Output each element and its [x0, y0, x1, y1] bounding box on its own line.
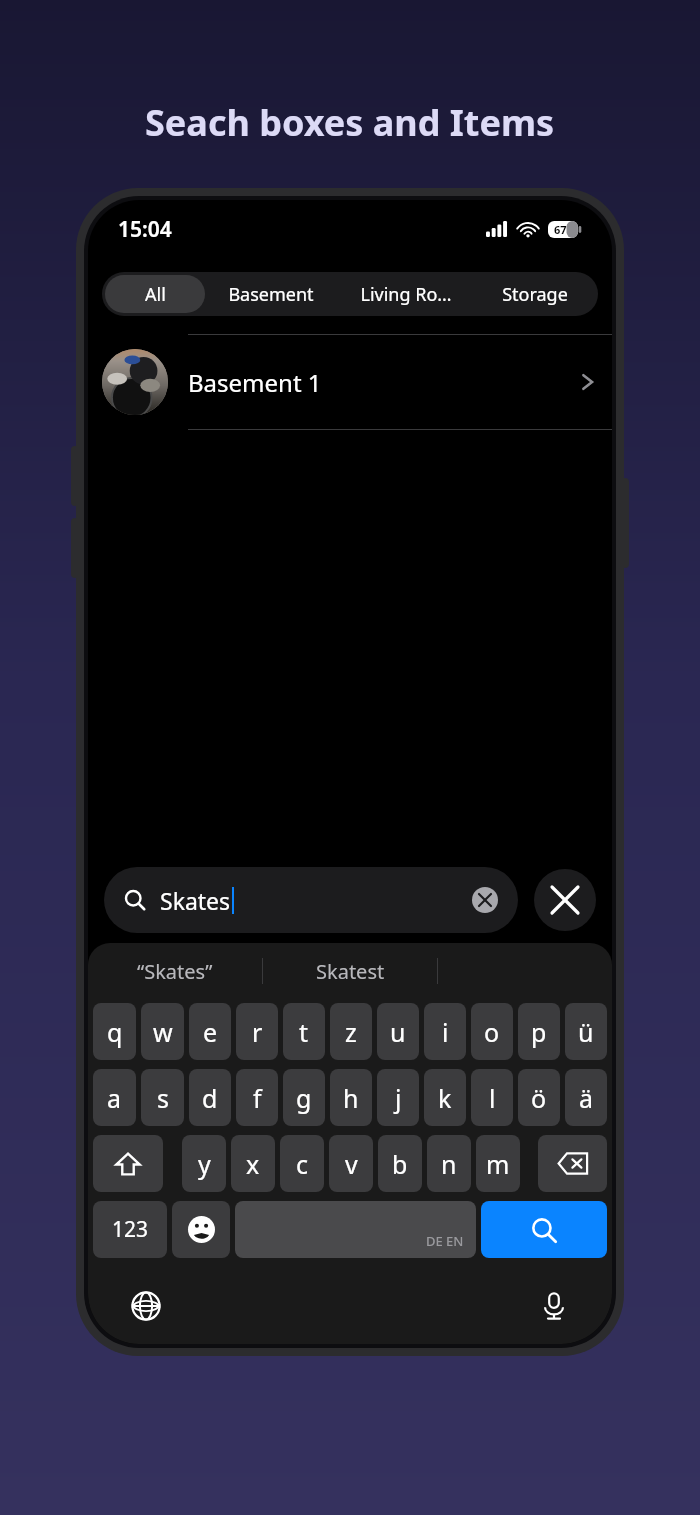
button[interactable]: q [93, 1003, 136, 1060]
staticText: 67 [554, 222, 567, 237]
button[interactable]: d [189, 1069, 231, 1126]
staticText: g [296, 1081, 312, 1115]
staticText: 123 [112, 1215, 149, 1244]
staticText: v [345, 1147, 358, 1181]
staticText: h [343, 1081, 359, 1115]
staticText: e [203, 1015, 218, 1049]
button[interactable]: s [141, 1069, 184, 1126]
button[interactable]: Voice input [530, 1282, 578, 1330]
staticText: Skates [160, 885, 231, 916]
button[interactable]: w [141, 1003, 184, 1060]
button[interactable]: b [378, 1135, 422, 1192]
staticText: r [252, 1015, 263, 1049]
button[interactable]: Skatest [263, 943, 437, 999]
button[interactable]: i [424, 1003, 466, 1060]
button[interactable]: t [283, 1003, 325, 1060]
button[interactable]: 123 [93, 1201, 167, 1258]
staticText: a [107, 1081, 122, 1115]
staticText: Skatest [316, 958, 385, 985]
staticText: ü [578, 1015, 594, 1049]
button[interactable]: f [236, 1069, 278, 1126]
button[interactable]: k [424, 1069, 466, 1126]
button[interactable]: g [283, 1069, 325, 1126]
button[interactable]: Basement 1 [88, 334, 612, 430]
button[interactable]: n [427, 1135, 471, 1192]
button[interactable]: r [236, 1003, 278, 1060]
staticText: “Skates” [137, 958, 213, 985]
button[interactable]: Skates [104, 867, 518, 933]
button[interactable]: Close search [534, 869, 596, 931]
staticText: x [246, 1147, 260, 1181]
staticText: o [484, 1015, 500, 1049]
staticText: All [145, 282, 166, 307]
staticText: q [107, 1015, 123, 1049]
button[interactable]: DE EN [235, 1201, 476, 1258]
button[interactable]: y [182, 1135, 226, 1192]
staticText: Basement 1 [188, 366, 322, 399]
button[interactable]: e [189, 1003, 231, 1060]
button[interactable]: h [330, 1069, 372, 1126]
button[interactable]: u [377, 1003, 419, 1060]
staticText: n [441, 1147, 457, 1181]
button[interactable]: v [329, 1135, 373, 1192]
staticText: i [442, 1015, 449, 1049]
button[interactable]: o [471, 1003, 513, 1060]
staticText: u [390, 1015, 406, 1049]
staticText: w [153, 1015, 173, 1049]
button[interactable]: m [476, 1135, 520, 1192]
staticText: 15:04 [118, 215, 172, 244]
button[interactable]: c [280, 1135, 324, 1192]
button[interactable]: All [105, 275, 205, 313]
button[interactable]: p [518, 1003, 560, 1060]
staticText: Storage [502, 282, 568, 307]
button[interactable]: Change language [122, 1282, 170, 1330]
staticText: ö [531, 1081, 547, 1115]
staticText: j [395, 1081, 402, 1115]
staticText: m [486, 1147, 510, 1181]
staticText: Basement [228, 282, 314, 307]
staticText: t [299, 1015, 309, 1049]
staticText: DE EN [426, 1232, 464, 1250]
staticText: s [157, 1081, 169, 1115]
staticText: Seach boxes and Items [145, 98, 555, 147]
button[interactable]: Emoji [172, 1201, 230, 1258]
staticText: f [253, 1081, 262, 1115]
staticText: c [296, 1147, 309, 1181]
staticText: l [489, 1081, 496, 1115]
staticText: Living Ro… [360, 282, 452, 307]
button[interactable]: x [231, 1135, 275, 1192]
button[interactable]: Backspace [538, 1135, 607, 1192]
staticText: y [198, 1147, 211, 1181]
button[interactable]: Search [481, 1201, 607, 1258]
button[interactable]: Shift [93, 1135, 163, 1192]
button[interactable]: Clear text [472, 887, 498, 913]
button[interactable]: “Skates” [88, 943, 262, 999]
button[interactable]: z [330, 1003, 372, 1060]
staticText: b [392, 1147, 408, 1181]
staticText: d [202, 1081, 218, 1115]
button[interactable]: Storage [474, 275, 595, 313]
staticText: k [438, 1081, 452, 1115]
button[interactable]: j [377, 1069, 419, 1126]
button[interactable]: a [93, 1069, 136, 1126]
staticText: p [531, 1015, 547, 1049]
button[interactable]: ä [565, 1069, 607, 1126]
button[interactable]: ö [518, 1069, 560, 1126]
button[interactable]: Living Ro… [337, 275, 474, 313]
staticText: z [345, 1015, 357, 1049]
button[interactable]: ü [565, 1003, 607, 1060]
staticText: ä [579, 1081, 594, 1115]
button[interactable]: Basement [205, 275, 337, 313]
button[interactable]: l [471, 1069, 513, 1126]
